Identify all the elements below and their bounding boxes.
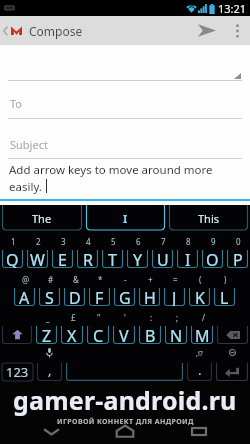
staticText: Add arrow keys to move around more easil… — [9, 162, 213, 194]
other: Back — [3, 26, 8, 36]
staticText: £ — [71, 312, 76, 323]
staticText: B — [145, 325, 156, 344]
staticText: The — [32, 211, 52, 226]
button[interactable]: 5 — [100, 231, 125, 269]
button[interactable]: ) — [212, 269, 237, 307]
button[interactable]: This — [167, 205, 250, 231]
staticText: A — [19, 287, 30, 306]
button[interactable]: " — [85, 307, 111, 345]
button[interactable]: Recents — [176, 423, 222, 439]
button[interactable]: Home — [102, 423, 148, 439]
button[interactable]: Space — [64, 345, 185, 382]
staticText: " — [97, 312, 101, 323]
button[interactable]: # — [37, 269, 62, 307]
button[interactable]: Hide keyboard — [28, 423, 74, 439]
button[interactable]: 8 — [175, 231, 200, 269]
button[interactable]: To — [0, 81, 250, 119]
button[interactable]: - — [112, 269, 137, 307]
staticText: I — [185, 249, 191, 268]
staticText: 8 — [186, 236, 191, 247]
button[interactable]: 7 — [150, 231, 175, 269]
button[interactable]: 123 — [0, 345, 35, 382]
button[interactable]: Send — [190, 16, 224, 45]
button[interactable]: The — [0, 205, 84, 231]
staticText: K — [195, 287, 205, 306]
button[interactable]: ' — [111, 307, 137, 345]
button[interactable]: _ — [34, 307, 59, 345]
staticText: This — [198, 211, 220, 226]
staticText: D — [69, 287, 81, 306]
staticText: E — [58, 249, 67, 268]
staticText: ) — [224, 274, 227, 285]
staticText: 6 — [136, 236, 141, 247]
staticText: S — [45, 287, 54, 306]
staticText: Compose — [29, 23, 83, 39]
button[interactable]: 9 — [200, 231, 225, 269]
button[interactable]: Add arrow keys to move around more easil… — [0, 159, 250, 205]
staticText: ,!? — [196, 349, 203, 359]
button[interactable]: / — [189, 307, 215, 345]
button[interactable]: ,!? — [185, 345, 214, 382]
staticText: 7 — [161, 236, 166, 247]
button[interactable] — [0, 45, 250, 81]
button[interactable]: More options — [224, 16, 250, 45]
staticText: G — [119, 287, 131, 306]
button[interactable]: 2 — [25, 231, 50, 269]
staticText: ИГРОВОЙ КОННЕКТ ДЛЯ АНДРОИД — [57, 417, 194, 427]
button[interactable]: = — [162, 269, 187, 307]
staticText: 0 — [236, 236, 241, 247]
staticText: 3 — [61, 236, 66, 247]
button[interactable]: + — [137, 269, 162, 307]
staticText: * — [98, 274, 103, 285]
button[interactable]: Back — [0, 16, 25, 45]
staticText: Subject — [10, 137, 48, 152]
button[interactable]: : — [137, 307, 163, 345]
staticText: V — [119, 325, 129, 344]
staticText: Z — [42, 325, 52, 344]
button[interactable]: ( — [187, 269, 212, 307]
staticText: R — [83, 249, 93, 268]
staticText: ; — [176, 312, 179, 323]
button[interactable]: * — [87, 269, 112, 307]
staticText: Y — [133, 249, 143, 268]
staticText: J — [172, 287, 177, 306]
button[interactable]: I — [84, 205, 167, 231]
staticText: M — [195, 325, 210, 344]
button[interactable]: 3 — [50, 231, 75, 269]
button[interactable]: Enter — [214, 345, 250, 382]
staticText: ' — [124, 312, 126, 323]
staticText: To — [10, 96, 23, 111]
button[interactable]: 6 — [125, 231, 150, 269]
staticText: P — [233, 249, 243, 268]
staticText: T — [108, 249, 117, 268]
button[interactable]: 0 — [225, 231, 250, 269]
staticText: gamer-android.ru — [13, 383, 237, 417]
button[interactable]: Subject — [0, 119, 250, 159]
staticText: Q — [6, 249, 19, 268]
staticText: O — [206, 249, 219, 268]
button[interactable]: @ — [12, 269, 37, 307]
staticText: 4 — [86, 236, 91, 247]
staticText: - — [124, 274, 127, 285]
button[interactable]: Shift — [0, 307, 34, 345]
staticText: / — [202, 312, 205, 323]
staticText: I — [123, 211, 128, 226]
staticText: X — [67, 325, 77, 344]
staticText: . — [198, 361, 202, 379]
staticText: 5 — [111, 236, 116, 247]
staticText: : — [150, 312, 153, 323]
staticText: _ — [46, 312, 50, 323]
staticText: @ — [22, 274, 30, 285]
staticText: C — [93, 325, 104, 344]
button[interactable]: Voice input — [35, 345, 64, 382]
button[interactable]: 4 — [75, 231, 100, 269]
button[interactable]: ; — [163, 307, 189, 345]
staticText: & — [73, 274, 79, 285]
staticText: 9 — [211, 236, 216, 247]
button[interactable]: 1 — [0, 231, 25, 269]
staticText: F — [95, 287, 104, 306]
staticText: 13:21 — [218, 1, 247, 16]
button[interactable]: Backspace — [215, 307, 250, 345]
button[interactable]: £ — [59, 307, 85, 345]
button[interactable]: & — [62, 269, 87, 307]
